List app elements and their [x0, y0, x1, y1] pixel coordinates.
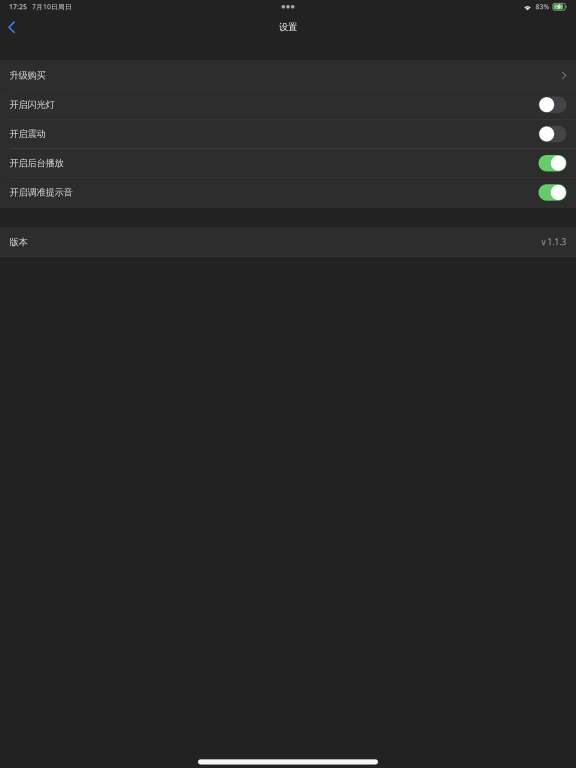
staticText: v 1.1.3 — [541, 237, 566, 247]
staticText: 设置 — [279, 21, 297, 33]
staticText: 开启后台播放 — [9, 157, 63, 169]
staticText: 升级购买 — [9, 70, 45, 81]
staticText: 83% — [535, 2, 549, 11]
button[interactable]: 开启闪光灯 — [0, 90, 576, 119]
staticText: 开启调准提示音 — [9, 187, 72, 198]
staticText: 开启震动 — [9, 128, 45, 140]
button[interactable]: Back — [0, 15, 28, 40]
button[interactable]: 开启调准提示音 — [0, 178, 576, 207]
button[interactable]: 开启震动 — [0, 120, 576, 148]
button[interactable]: 升级购买 — [0, 61, 576, 90]
button[interactable]: 版本 — [0, 228, 576, 256]
staticText: 版本 — [9, 236, 27, 248]
staticText: 7月10日周日 — [32, 2, 72, 11]
button[interactable]: 开启后台播放 — [0, 149, 576, 178]
staticText: 17:25 — [9, 2, 27, 11]
staticText: 开启闪光灯 — [9, 99, 54, 110]
